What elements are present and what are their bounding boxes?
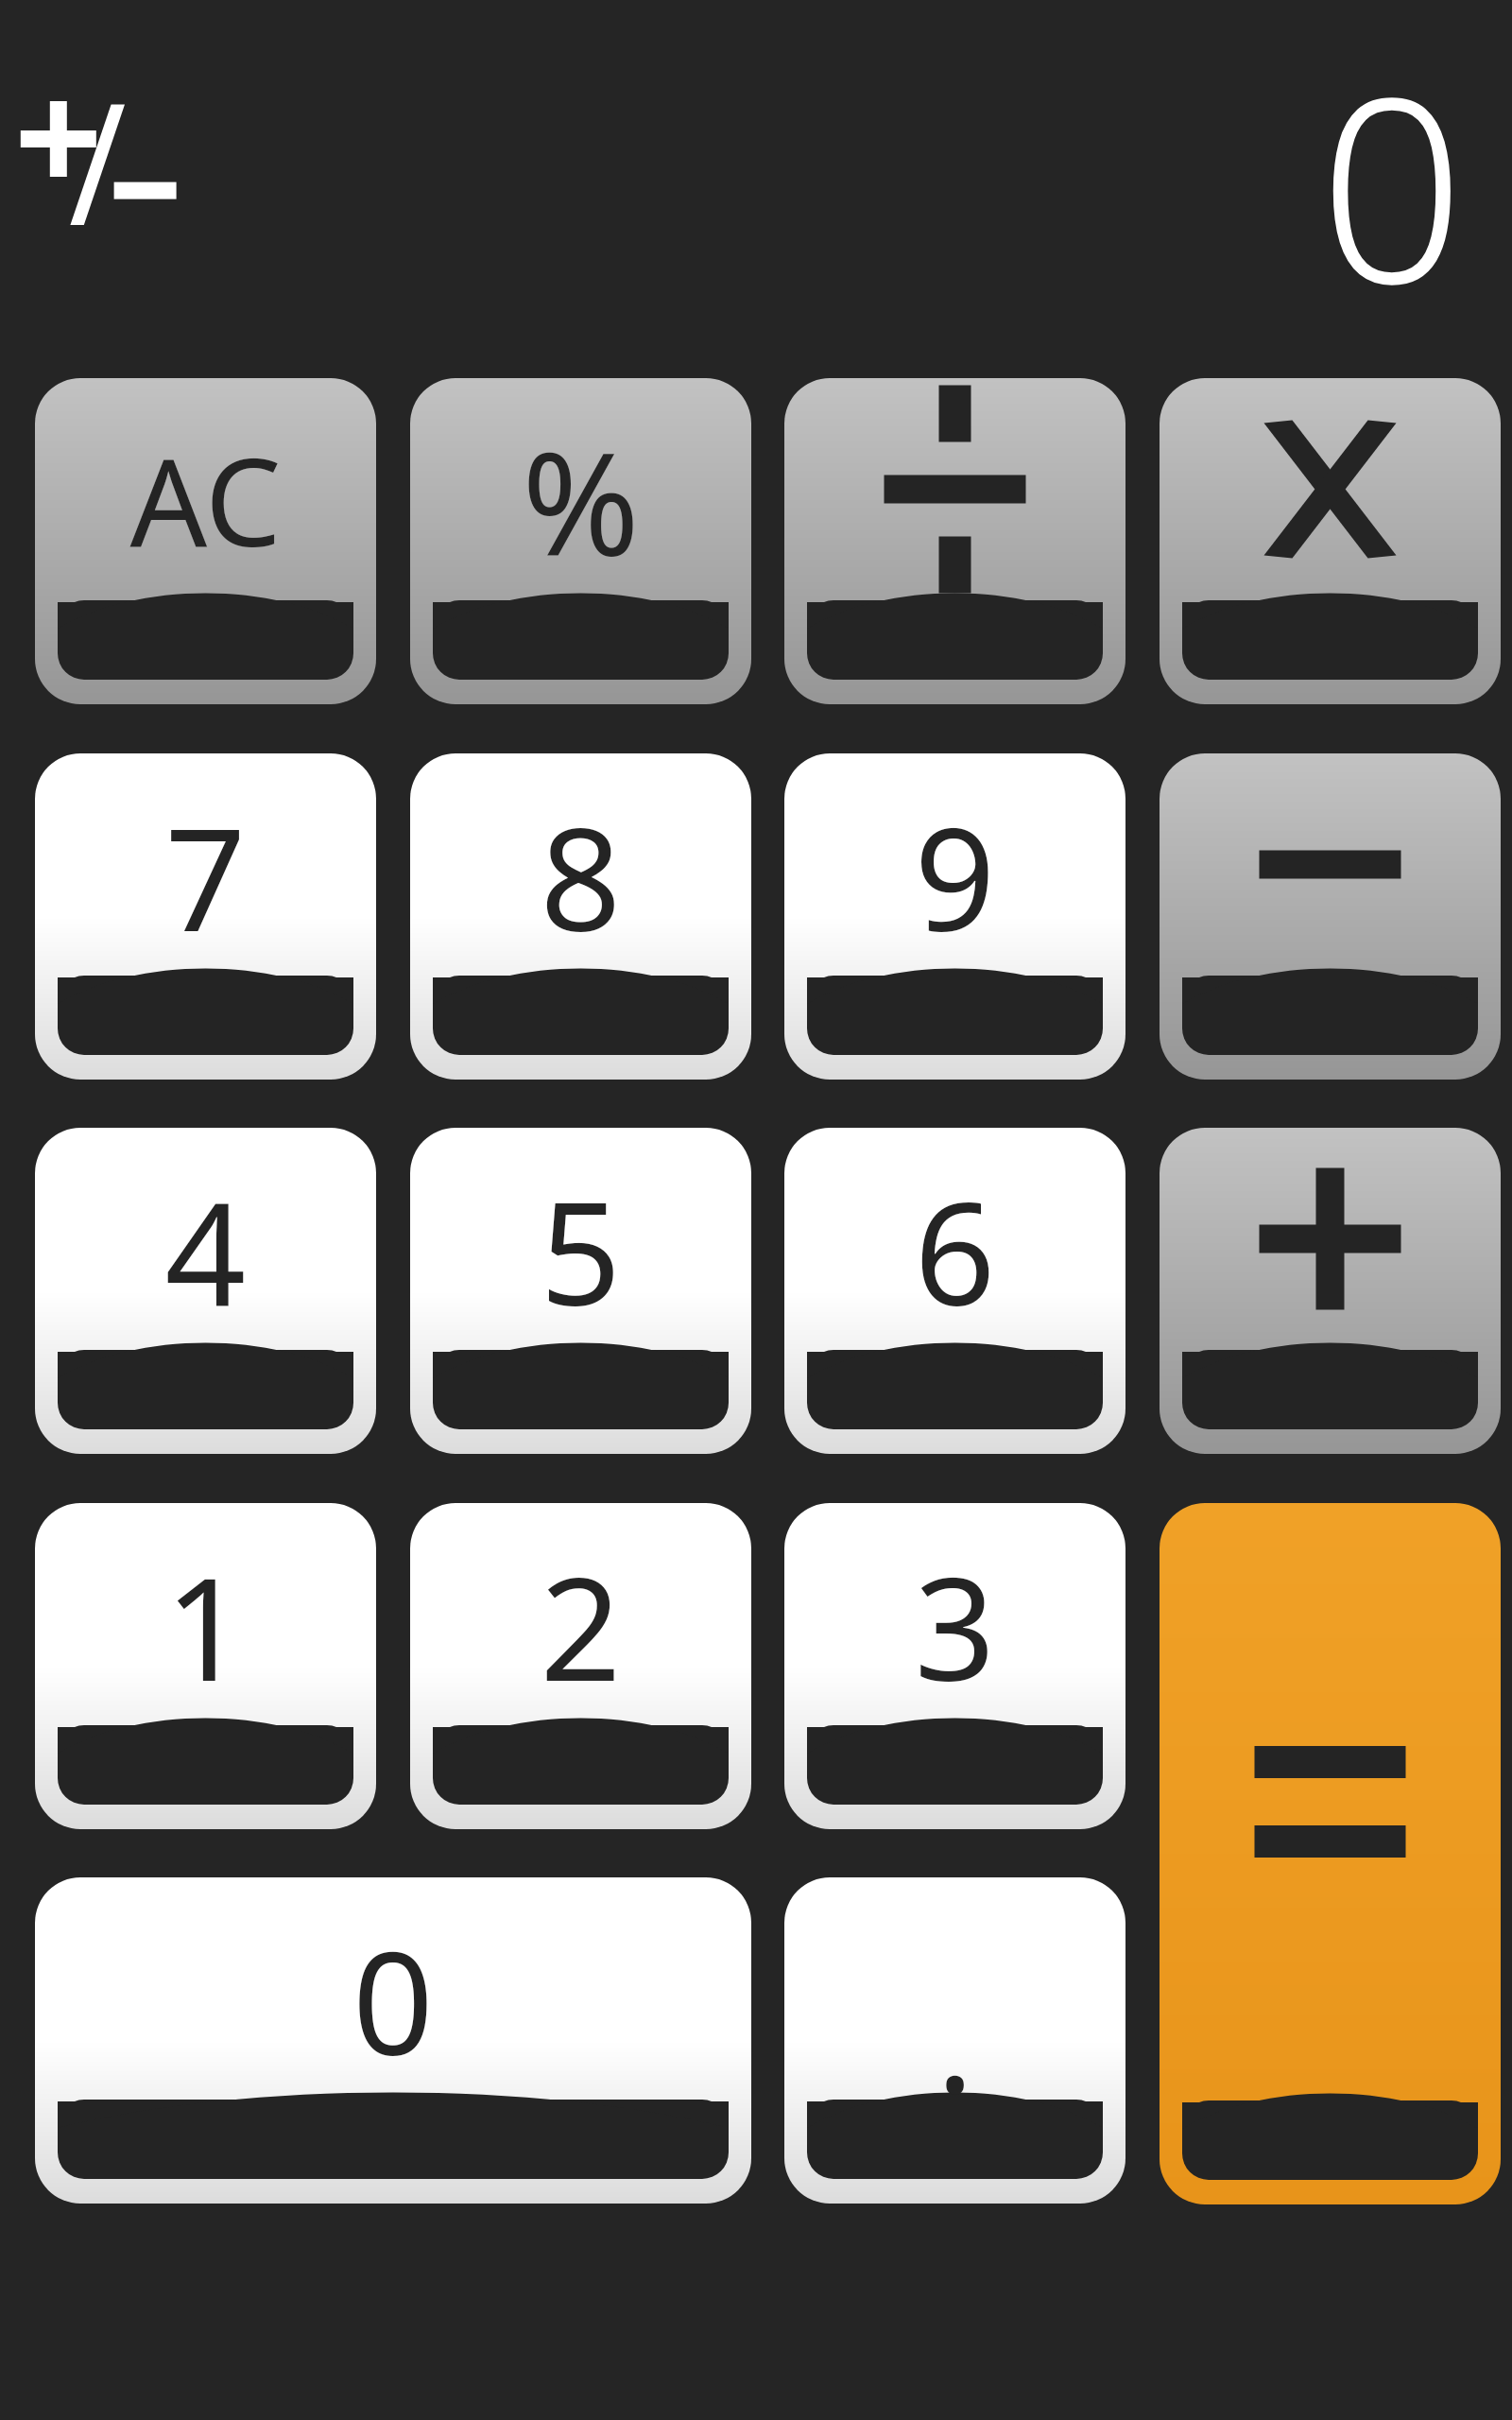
staticText: 6 [784,1154,1125,1339]
staticText: % [410,405,751,589]
button[interactable]: 2 [410,1503,751,1829]
button[interactable]: AC [35,378,376,704]
button[interactable]: . [784,1877,1125,2204]
button[interactable]: Equals [1160,1503,1501,2204]
staticText: AC [35,417,376,574]
staticText: 5 [410,1154,751,1339]
button[interactable]: Toggle sign [23,102,193,225]
button[interactable]: Subtract [1160,753,1501,1080]
button[interactable]: 1 [35,1503,376,1829]
button[interactable]: Add [1160,1128,1501,1454]
staticText: 8 [410,780,751,964]
staticText: 3 [784,1530,1125,1714]
button[interactable]: 4 [35,1128,376,1454]
button[interactable]: % [410,378,751,704]
staticText: 0 [35,1904,751,2088]
staticText: . [784,1942,1125,2126]
button[interactable]: 5 [410,1128,751,1454]
staticText: 7 [35,780,376,964]
button[interactable]: 3 [784,1503,1125,1829]
button[interactable]: Multiply [1160,378,1501,704]
staticText: 9 [784,780,1125,964]
staticText: 4 [35,1154,376,1339]
staticText: 2 [410,1530,751,1714]
button[interactable]: 0 [35,1877,751,2204]
button[interactable]: 9 [784,753,1125,1080]
button[interactable]: 6 [784,1128,1125,1454]
button[interactable]: 7 [35,753,376,1080]
button[interactable]: 8 [410,753,751,1080]
button[interactable]: Divide [784,378,1125,704]
staticText: 1 [35,1530,376,1714]
staticText: 0 [1039,9,1465,321]
